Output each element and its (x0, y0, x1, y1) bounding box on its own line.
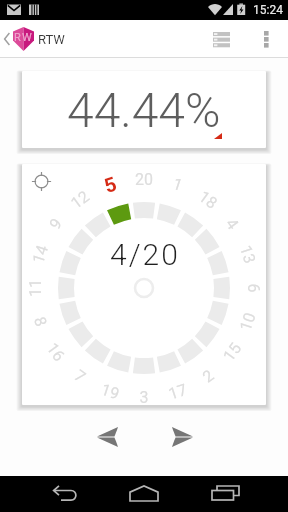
button[interactable]: Next (161, 416, 203, 458)
staticText: RTW (38, 32, 65, 47)
button[interactable]: List view (199, 20, 244, 58)
button[interactable]: Previous (86, 416, 128, 458)
button[interactable]: More options (244, 20, 288, 58)
staticText: 15:24 (253, 3, 283, 17)
staticText: RW (14, 31, 33, 44)
button[interactable]: Recent apps (197, 476, 253, 512)
staticText: 4/20 (110, 237, 180, 272)
button[interactable]: Target (22, 164, 266, 405)
button[interactable]: Home (116, 476, 172, 512)
button[interactable]: 44.44% (22, 71, 266, 148)
button[interactable]: RW (0, 20, 65, 58)
staticText: 44.44% (67, 82, 221, 138)
button[interactable]: Back (37, 476, 93, 512)
button[interactable]: Target (32, 172, 51, 191)
